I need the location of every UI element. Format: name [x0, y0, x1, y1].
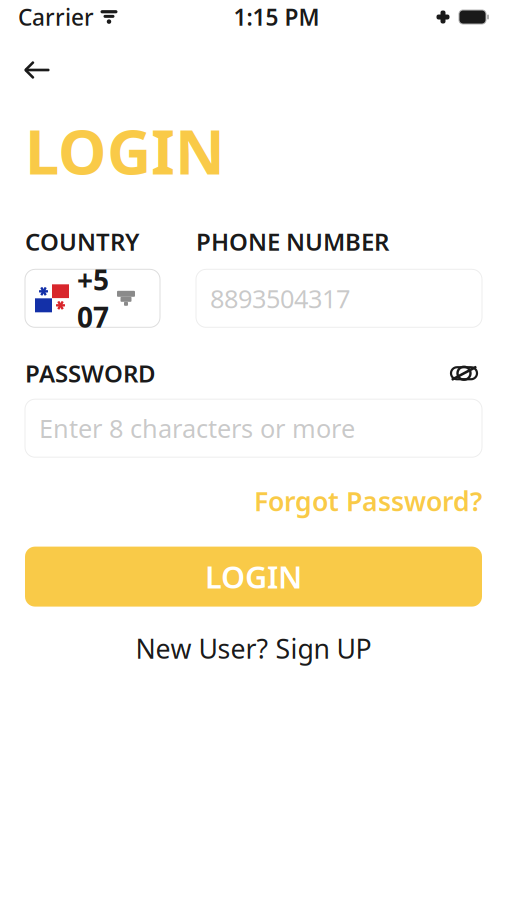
button[interactable]: Phone number	[196, 269, 482, 327]
staticText: COUNTRY	[25, 225, 139, 257]
button[interactable]: LOGIN	[25, 547, 482, 607]
button[interactable]: Password	[25, 399, 482, 457]
staticText: LOGIN	[25, 110, 225, 191]
button[interactable]: Forgot Password?	[254, 479, 482, 523]
button[interactable]: Back	[14, 48, 60, 92]
staticText: Carrier	[18, 2, 94, 32]
staticText: New User? Sign UP	[135, 631, 371, 666]
button[interactable]: New User? Sign UP	[135, 625, 371, 672]
staticText: Forgot Password?	[254, 483, 482, 519]
staticText: LOGIN	[205, 556, 302, 597]
button[interactable]: Show password	[446, 360, 482, 386]
staticText: +507	[77, 261, 109, 335]
staticText: PHONE NUMBER	[196, 225, 389, 257]
staticText: Enter 8 characters or more	[39, 411, 355, 445]
staticText: PASSWORD	[25, 357, 156, 389]
staticText: 8893504317	[210, 281, 350, 315]
button[interactable]: Select country code, currently plus 507	[25, 269, 160, 327]
staticText: 1:15 PM	[233, 2, 319, 32]
